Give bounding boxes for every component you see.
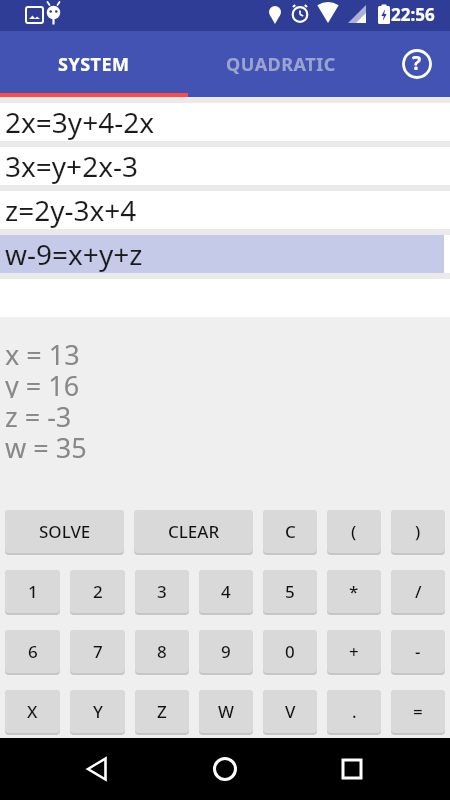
button[interactable]: ) (391, 510, 445, 553)
button[interactable]: V (263, 690, 317, 733)
staticText: QUADRATIC (226, 52, 336, 77)
button[interactable]: W (199, 690, 253, 733)
button[interactable]: 0 (263, 630, 317, 673)
button[interactable]: * (327, 570, 381, 613)
button[interactable]: 8 (135, 630, 189, 673)
button[interactable]: SOLVE (5, 510, 124, 553)
button[interactable]: / (391, 570, 445, 613)
staticText: W (218, 700, 234, 723)
button[interactable]: 7 (70, 630, 125, 673)
button[interactable]: QUADRATIC (188, 31, 374, 97)
staticText: Y (93, 700, 103, 723)
button[interactable]: 5 (263, 570, 317, 613)
button[interactable]: + (327, 630, 381, 673)
button[interactable]: ? (374, 31, 450, 97)
staticText: + (349, 640, 359, 663)
button[interactable]: C (263, 510, 317, 553)
staticText: X (27, 700, 38, 723)
staticText: = (413, 700, 423, 723)
staticText: Z (157, 700, 167, 723)
staticText: x = 13 (5, 336, 80, 367)
button[interactable]: 3 (135, 570, 189, 613)
button[interactable]: z=2y-3x+4 (0, 191, 450, 229)
button[interactable]: 2x=3y+4-2x (0, 103, 450, 141)
staticText: 0 (285, 640, 295, 663)
staticText: SYSTEM (58, 52, 130, 77)
staticText: z=2y-3x+4 (5, 191, 137, 229)
staticText: CLEAR (168, 520, 220, 543)
staticText: 2x=3y+4-2x (5, 103, 155, 141)
button[interactable]: CLEAR (134, 510, 253, 553)
staticText: 3x=y+2x-3 (5, 147, 139, 185)
staticText: y = 16 (5, 367, 80, 398)
staticText: 2 (93, 580, 103, 603)
staticText: ( (351, 520, 357, 543)
staticText: 1 (28, 580, 38, 603)
button[interactable]: 3x=y+2x-3 (0, 147, 450, 185)
button[interactable]: . (327, 690, 381, 733)
button[interactable]: X (5, 690, 60, 733)
button[interactable]: ( (327, 510, 381, 553)
button[interactable]: Z (135, 690, 189, 733)
button[interactable]: Y (70, 690, 125, 733)
staticText: 5 (285, 580, 295, 603)
staticText: 4 (221, 580, 231, 603)
staticText: C (285, 520, 296, 543)
staticText: 8 (157, 640, 167, 663)
button[interactable]: 2 (70, 570, 125, 613)
staticText: 7 (93, 640, 103, 663)
staticText: V (285, 700, 296, 723)
button[interactable]: - (391, 630, 445, 673)
button[interactable]: 6 (5, 630, 60, 673)
staticText: . (352, 700, 357, 723)
staticText: z = -3 (5, 398, 72, 429)
staticText: ? (412, 50, 422, 76)
staticText: 9 (221, 640, 231, 663)
staticText: ) (415, 520, 421, 543)
button[interactable]: w-9=x+y+z (0, 235, 450, 273)
button[interactable]: 9 (199, 630, 253, 673)
button[interactable]: 1 (5, 570, 60, 613)
staticText: / (415, 580, 422, 603)
staticText: 6 (28, 640, 38, 663)
staticText: w = 35 (5, 429, 87, 460)
button[interactable]: SYSTEM (0, 31, 188, 97)
staticText: 3 (157, 580, 167, 603)
staticText: - (415, 640, 421, 663)
button[interactable]: = (391, 690, 445, 733)
staticText: w-9=x+y+z (5, 235, 143, 273)
staticText: 22:56 (391, 3, 435, 26)
staticText: SOLVE (39, 520, 91, 543)
button[interactable] (193, 738, 257, 800)
button[interactable]: 4 (199, 570, 253, 613)
button[interactable] (66, 738, 130, 800)
button[interactable] (320, 738, 384, 800)
staticText: * (349, 580, 359, 603)
